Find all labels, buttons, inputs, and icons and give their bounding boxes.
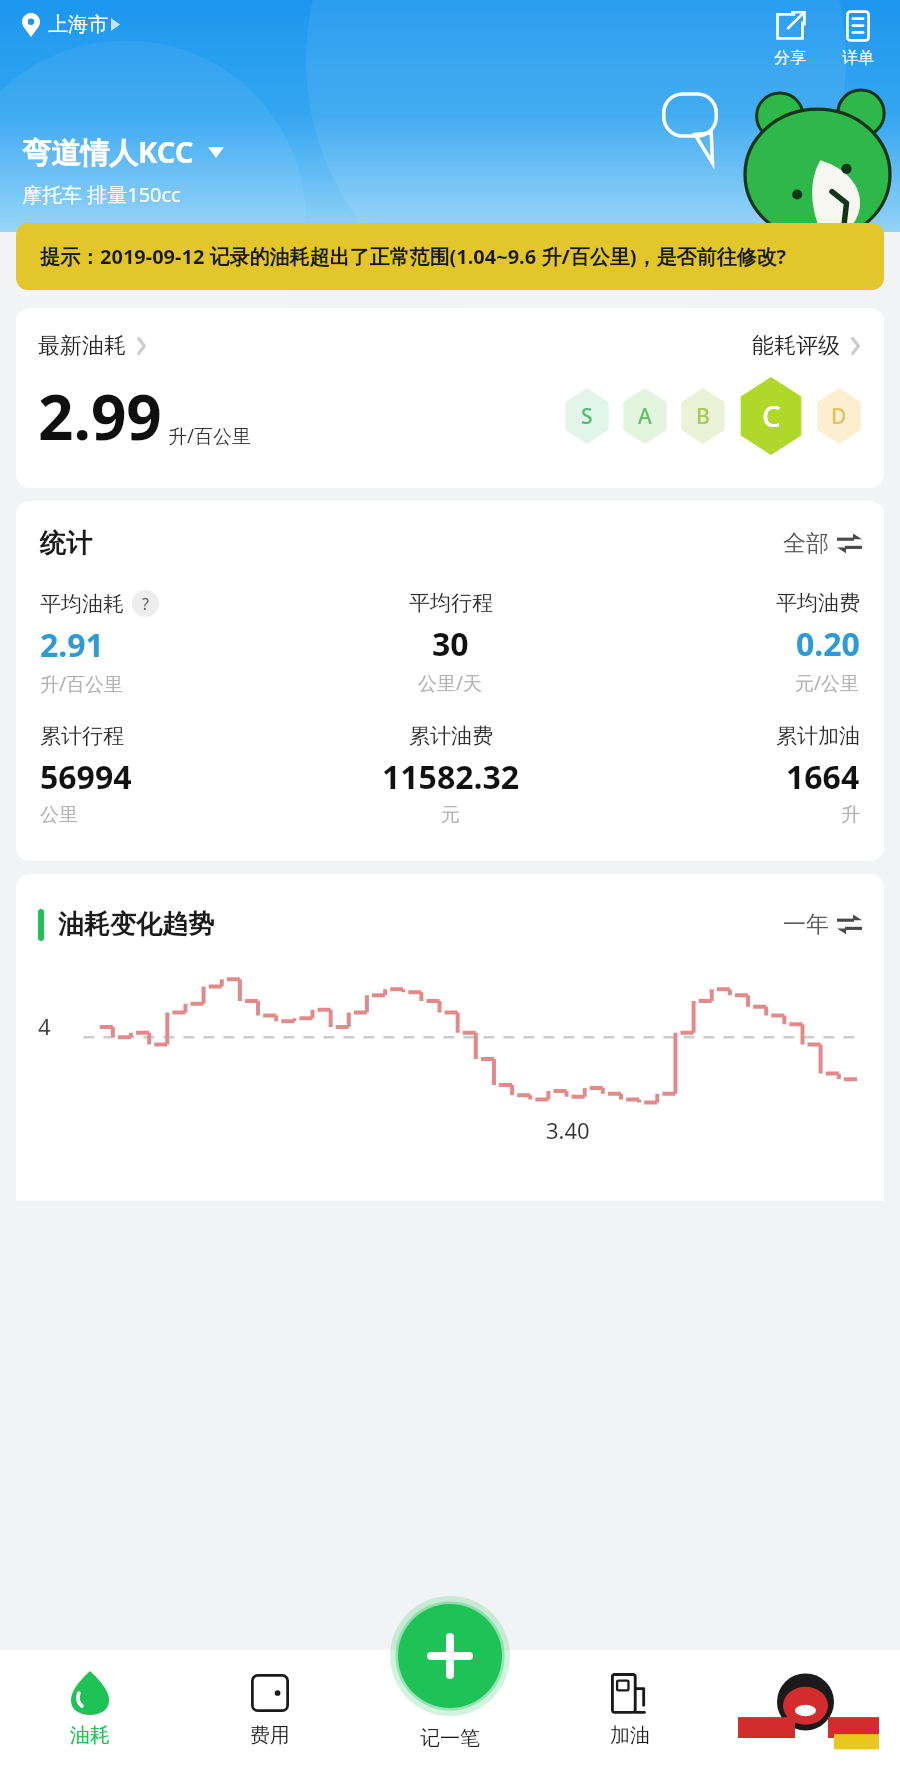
button[interactable]: 费用	[180, 1663, 360, 1756]
staticText: 平均行程	[409, 590, 493, 616]
staticText: 累计油费	[409, 723, 493, 749]
staticText: 一年	[783, 910, 829, 939]
staticText: ?	[142, 593, 149, 615]
staticText: 弯道情人KCC	[22, 132, 194, 172]
button[interactable]: 累计行程	[40, 723, 314, 827]
staticText: 最新油耗	[38, 332, 126, 360]
button[interactable]: S	[562, 388, 612, 444]
staticText: D	[831, 402, 847, 431]
button[interactable]: 累计油费	[314, 723, 587, 827]
staticText: 0.20	[796, 622, 860, 666]
staticText: 3.40	[546, 1115, 590, 1145]
button[interactable]: C	[736, 377, 806, 455]
staticText: 元	[441, 803, 460, 827]
button[interactable]: 平均行程	[314, 590, 587, 696]
staticText: 升	[841, 803, 860, 827]
staticText: 11582.32	[382, 755, 520, 799]
staticText: 4	[38, 1011, 51, 1041]
button[interactable]: 最新油耗	[38, 332, 148, 360]
staticText: C	[762, 396, 781, 436]
staticText: 1664	[786, 755, 860, 799]
staticText: 记一笔	[420, 1726, 480, 1751]
staticText: 56994	[40, 755, 132, 799]
staticText: 费用	[250, 1723, 290, 1748]
button[interactable]: 全部	[783, 529, 862, 558]
staticText: 摩托车 排量150cc	[22, 181, 181, 208]
button[interactable]: 弯道情人KCC	[22, 130, 224, 174]
staticText: A	[638, 402, 652, 431]
staticText: 能耗评级	[752, 332, 840, 360]
button[interactable]: 记一笔 Add record	[398, 1604, 502, 1708]
staticText: 累计行程	[40, 723, 124, 749]
staticText: 油耗变化趋势	[58, 908, 214, 941]
button[interactable]: 加油	[540, 1663, 720, 1756]
button[interactable]: 累计加油	[587, 723, 860, 827]
button[interactable]: ?	[132, 590, 159, 617]
staticText: 公里/天	[418, 670, 483, 696]
staticText: 统计	[40, 527, 92, 560]
staticText: 油耗	[70, 1723, 110, 1748]
button[interactable]: 平均油耗	[40, 590, 314, 697]
staticText: 2.99	[38, 374, 162, 458]
staticText: 元/公里	[795, 670, 860, 696]
button[interactable]: Details	[836, 6, 880, 72]
staticText: 全部	[783, 529, 829, 558]
button[interactable]: D	[814, 388, 864, 444]
button[interactable]: 一年	[783, 910, 862, 939]
staticText: 上海市	[48, 12, 108, 37]
staticText: 加油	[610, 1723, 650, 1748]
staticText: 分享	[774, 48, 806, 68]
staticText: 升/百公里	[40, 671, 124, 697]
button[interactable]: 记一笔	[360, 1668, 540, 1751]
staticText: 公里	[40, 803, 78, 827]
staticText: 提示：2019-09-12 记录的油耗超出了正常范围(1.04~9.6 升/百公…	[40, 243, 786, 270]
button[interactable]: 平均油费	[587, 590, 860, 696]
button[interactable]: Forum logo	[720, 1662, 900, 1757]
staticText: B	[696, 402, 710, 431]
button[interactable]: 油耗	[0, 1663, 180, 1756]
staticText: 30	[432, 622, 469, 666]
button[interactable]: A	[620, 388, 670, 444]
button[interactable]: 能耗评级	[752, 332, 862, 360]
staticText: 平均油费	[776, 590, 860, 616]
staticText: 平均油耗	[40, 591, 124, 617]
button[interactable]: Share	[768, 6, 812, 72]
staticText: 2.91	[40, 623, 104, 667]
button[interactable]: 提示：2019-09-12 记录的油耗超出了正常范围(1.04~9.6 升/百公…	[16, 223, 884, 290]
staticText: 累计加油	[776, 723, 860, 749]
button[interactable]: B	[678, 388, 728, 444]
staticText: S	[581, 402, 593, 431]
staticText: 升/百公里	[168, 423, 252, 449]
staticText: 详单	[842, 48, 874, 68]
button[interactable]: 上海市	[18, 6, 124, 43]
